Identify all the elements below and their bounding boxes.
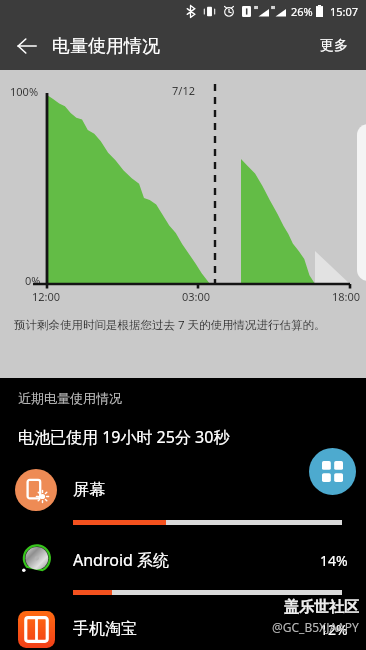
staticText: 14% [320,551,348,570]
button[interactable]: 更多 [314,29,354,63]
button[interactable]: Back [10,29,44,63]
staticText: 03:00 [182,289,211,304]
staticText: 15:07 [330,4,359,19]
staticText: 26% [291,4,313,19]
staticText: Android 系统 [73,549,170,571]
staticText: @GC_B5XJAAPY [272,619,359,635]
button[interactable]: App list [309,448,356,495]
staticText: 电量使用情况 [52,35,160,58]
button[interactable]: 屏幕 [0,468,366,538]
button[interactable]: Android 系统 [0,538,366,608]
button[interactable]: 手机淘宝 [0,608,366,650]
staticText: 盖乐世社区 [284,598,359,617]
staticText: 0% [25,273,41,288]
staticText: 更多 [320,37,348,55]
staticText: 屏幕 [73,480,105,500]
staticText: 近期电量使用情况 [18,390,122,406]
staticText: 12% [320,620,348,639]
staticText: 电池已使用 19小时 25分 30秒 [18,426,230,448]
staticText: 预计剩余使用时间是根据您过去 7 天的使用情况进行估算的。 [14,317,352,333]
staticText: 18:00 [332,289,361,304]
staticText: 12:00 [32,289,61,304]
staticText: 100% [10,84,39,99]
staticText: 手机淘宝 [73,619,137,639]
staticText: 7/12 [172,83,195,98]
